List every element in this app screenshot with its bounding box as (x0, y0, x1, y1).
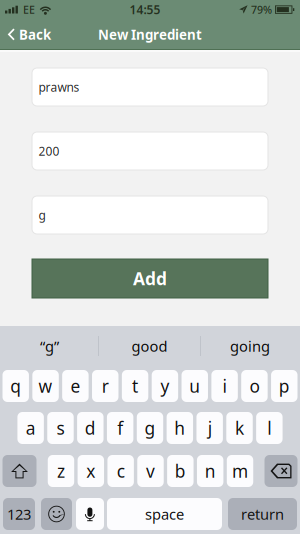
button[interactable]: space (107, 498, 222, 530)
button[interactable]: Shift (2, 455, 36, 487)
staticText: t (132, 374, 138, 397)
staticText: good (131, 336, 167, 356)
button[interactable]: p (271, 370, 297, 402)
staticText: n (205, 459, 216, 482)
button[interactable]: z (48, 455, 74, 487)
staticText: return (241, 504, 284, 524)
staticText: space (145, 504, 184, 524)
button[interactable]: 123 (3, 498, 35, 530)
button[interactable]: t (122, 370, 148, 402)
staticText: y (160, 374, 169, 397)
staticText: w (39, 374, 53, 397)
button[interactable]: return (228, 498, 297, 530)
button[interactable]: Emoji (41, 498, 72, 530)
button[interactable]: k (226, 412, 253, 444)
staticText: m (232, 459, 248, 482)
button[interactable]: g (137, 412, 163, 444)
button[interactable]: f (107, 412, 133, 444)
button[interactable]: a (17, 412, 44, 444)
button[interactable]: i (211, 370, 238, 402)
staticText: q (10, 374, 21, 397)
staticText: p (279, 374, 290, 397)
staticText: v (146, 459, 155, 482)
button[interactable]: q (2, 370, 29, 402)
button[interactable]: Back (0, 19, 90, 49)
button[interactable]: n (197, 455, 223, 487)
staticText: g (144, 416, 155, 439)
button[interactable]: Delete (264, 455, 297, 487)
button[interactable]: “g” (0, 326, 99, 366)
staticText: 200 (38, 143, 59, 159)
staticText: f (117, 416, 123, 439)
button[interactable]: u (181, 370, 208, 402)
staticText: “g” (40, 336, 59, 356)
staticText: o (249, 374, 259, 397)
button[interactable]: d (77, 412, 103, 444)
button[interactable]: Dictate (76, 498, 104, 530)
staticText: going (230, 336, 270, 356)
staticText: k (235, 416, 244, 439)
staticText: prawns (38, 79, 79, 95)
staticText: r (102, 374, 109, 397)
button[interactable]: o (241, 370, 268, 402)
staticText: EE (23, 2, 35, 17)
button[interactable]: e (62, 370, 89, 402)
button[interactable]: s (47, 412, 74, 444)
staticText: l (267, 416, 271, 439)
button[interactable]: v (137, 455, 164, 487)
button[interactable]: h (167, 412, 193, 444)
staticText: New Ingredient (98, 26, 202, 43)
staticText: s (56, 416, 64, 439)
button[interactable]: b (167, 455, 193, 487)
staticText: b (175, 459, 186, 482)
button[interactable]: r (92, 370, 118, 402)
button[interactable]: m (227, 455, 253, 487)
staticText: d (85, 416, 96, 439)
staticText: Back (19, 26, 51, 43)
staticText: i (223, 374, 227, 397)
staticText: j (208, 416, 212, 439)
button[interactable]: w (32, 370, 59, 402)
button[interactable]: x (78, 455, 104, 487)
staticText: g (38, 207, 45, 223)
button[interactable]: c (107, 455, 134, 487)
staticText: c (117, 459, 125, 482)
button[interactable]: Add (32, 259, 268, 298)
button[interactable]: going (200, 326, 300, 366)
button[interactable]: l (256, 412, 282, 444)
button[interactable]: y (152, 370, 178, 402)
button[interactable]: j (196, 412, 223, 444)
staticText: e (70, 374, 80, 397)
staticText: a (26, 416, 36, 439)
staticText: 79% (251, 2, 272, 17)
staticText: 123 (7, 504, 31, 524)
button[interactable]: good (99, 326, 200, 366)
staticText: h (174, 416, 185, 439)
staticText: z (57, 459, 65, 482)
staticText: Add (133, 267, 167, 290)
staticText: x (86, 459, 95, 482)
staticText: 14:55 (129, 1, 160, 17)
staticText: u (189, 374, 200, 397)
